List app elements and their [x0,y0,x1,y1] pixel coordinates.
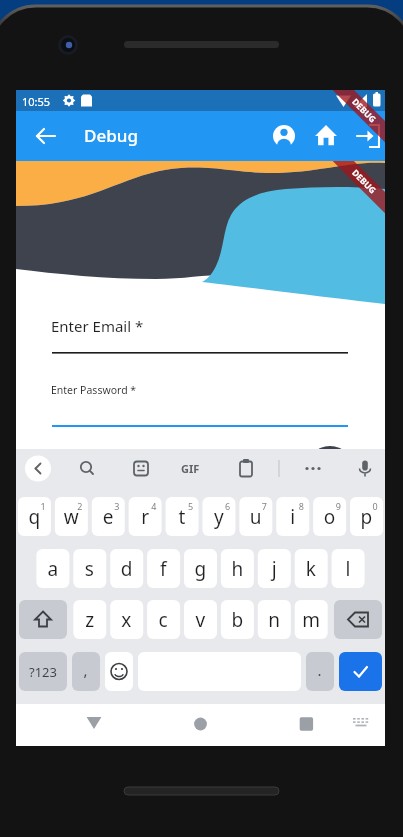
button[interactable]: Home [305,111,347,161]
button[interactable]: Account [263,111,305,161]
button[interactable]: Email field [52,315,349,355]
button[interactable]: Back [24,111,68,161]
button[interactable]: Password field [52,382,349,424]
button[interactable]: Login [347,111,389,161]
